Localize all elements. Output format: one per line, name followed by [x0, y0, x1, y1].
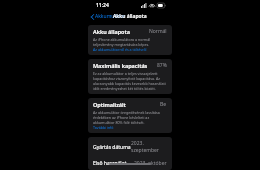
staticText: Az akkumulátor öregedésének lassítása ér… [93, 110, 167, 125]
staticText: Be [160, 101, 167, 108]
staticText: 2023. október [134, 160, 167, 167]
staticText: Az iPhone akkumulátora a normál teljesít… [93, 37, 167, 47]
staticText: 2023. szeptember [131, 140, 167, 154]
button[interactable]: Back [88, 12, 128, 21]
staticText: Normál [149, 28, 167, 35]
staticText: Akku állapota [113, 13, 147, 20]
other: Back [91, 14, 94, 20]
button[interactable]: Első használat [88, 157, 172, 170]
staticText: Gyártás dátuma [93, 144, 131, 151]
button[interactable]: Gyártás dátuma [88, 137, 172, 157]
button[interactable]: Az akkumulátorról és a töltésről [93, 47, 147, 52]
staticText: 11:24 [96, 2, 109, 9]
button[interactable]: Maximális kapacitás [88, 59, 172, 94]
staticText: Akku állapota [93, 28, 130, 35]
staticText: 87% [157, 62, 167, 69]
staticText: Maximális kapacitás [93, 62, 148, 69]
button[interactable]: További infó [93, 125, 114, 130]
staticText: Optimalizált [93, 101, 126, 108]
staticText: Akkumulátor [95, 13, 126, 20]
staticText: Ez az akkumulátor a teljes visszajelzett… [93, 71, 167, 91]
staticText: Első használat [93, 160, 127, 167]
button[interactable]: Akku állapota [88, 25, 172, 55]
button[interactable]: Optimalizált [88, 98, 172, 133]
